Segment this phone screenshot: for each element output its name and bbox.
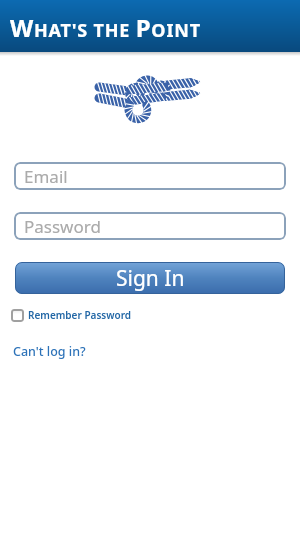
staticText: WHAT'S THE POINT xyxy=(10,11,201,44)
staticText: Remember Password xyxy=(28,308,132,322)
button[interactable]: Sign In xyxy=(15,262,285,294)
staticText: Email xyxy=(24,165,68,188)
button[interactable]: Can't log in? xyxy=(13,343,86,360)
button[interactable]: Remember Password xyxy=(11,308,132,322)
staticText: Sign In xyxy=(116,264,185,293)
button[interactable]: Email xyxy=(14,162,286,190)
button[interactable]: Password xyxy=(14,212,286,240)
staticText: Password xyxy=(24,215,101,238)
